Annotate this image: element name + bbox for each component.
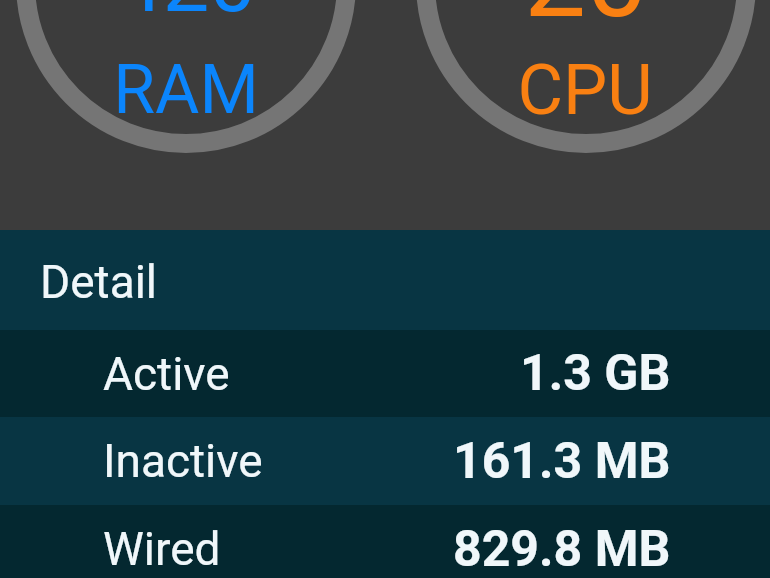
button[interactable]: Wired — [0, 505, 770, 578]
staticText: 161.3 MB — [453, 432, 671, 491]
button[interactable]: CPU gauge, 20 percent — [416, 0, 756, 153]
staticText: Detail — [40, 255, 158, 309]
staticText: 20 — [366, 0, 770, 43]
staticText: CPU — [365, 49, 770, 131]
button[interactable]: RAM gauge, 420 megabytes — [16, 0, 356, 153]
staticText: Active — [103, 347, 230, 401]
staticText: Inactive — [103, 434, 263, 488]
staticText: 420 — [0, 0, 406, 31]
button[interactable]: Detail — [0, 230, 770, 330]
staticText: 1.3 GB — [520, 344, 671, 403]
staticText: 829.8 MB — [453, 520, 671, 578]
staticText: RAM — [0, 50, 406, 130]
staticText: Wired — [103, 522, 221, 576]
button[interactable]: Active — [0, 330, 770, 417]
button[interactable]: Inactive — [0, 417, 770, 505]
